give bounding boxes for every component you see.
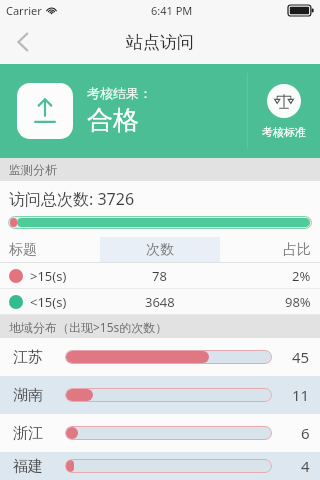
staticText: >15(s)	[30, 267, 67, 285]
staticText: 占比	[283, 241, 311, 259]
staticText: 访问总次数: 3726	[9, 188, 135, 210]
button[interactable]: Back	[0, 20, 46, 64]
staticText: 江苏	[13, 348, 43, 367]
staticText: 站点访问	[126, 32, 194, 53]
staticText: 78	[152, 267, 167, 285]
button[interactable]: 考核标准	[248, 64, 320, 158]
staticText: 45	[292, 347, 310, 367]
staticText: 考核标准	[262, 125, 306, 139]
staticText: 考核结果：	[87, 85, 152, 101]
staticText: 监测分析	[9, 162, 57, 177]
staticText: 6:41 PM	[151, 3, 193, 18]
staticText: 湖南	[13, 386, 43, 405]
staticText: 6	[301, 423, 310, 443]
button[interactable]: 福建	[0, 452, 320, 480]
staticText: 98%	[285, 293, 311, 311]
button[interactable]: 江苏	[0, 338, 320, 376]
staticText: 浙江	[13, 424, 43, 443]
button[interactable]: 湖南	[0, 376, 320, 414]
staticText: Carrier	[6, 3, 42, 18]
staticText: 福建	[13, 457, 43, 476]
staticText: 标题	[9, 241, 37, 259]
staticText: <15(s)	[30, 293, 67, 311]
button[interactable]: 浙江	[0, 414, 320, 452]
button[interactable]: 考核结果：	[0, 64, 247, 158]
staticText: 3648	[145, 293, 175, 311]
staticText: 地域分布（出现>15s的次数）	[9, 319, 168, 335]
staticText: 2%	[292, 267, 311, 285]
staticText: 次数	[146, 241, 174, 259]
staticText: 合格	[87, 104, 139, 137]
staticText: 4	[301, 456, 310, 476]
staticText: 11	[292, 385, 310, 405]
